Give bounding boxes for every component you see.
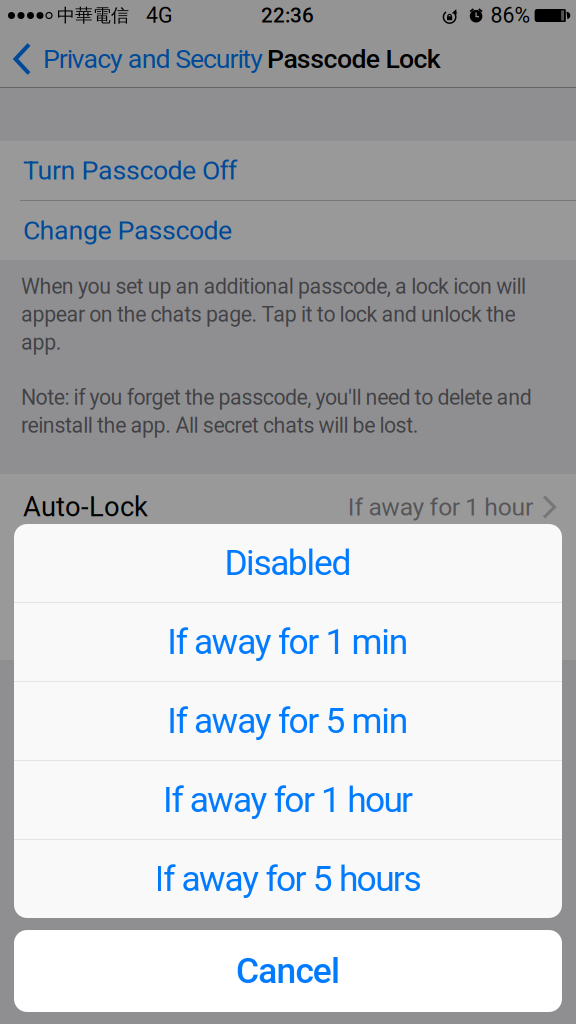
button[interactable]: Change Passcode — [0, 201, 576, 260]
staticText: Cancel — [236, 950, 340, 992]
button[interactable]: Cancel — [14, 930, 562, 1012]
button[interactable]: If away for 5 hours — [14, 840, 562, 918]
staticText: If away for 5 min — [167, 700, 409, 742]
button[interactable]: Turn Passcode Off — [0, 141, 576, 200]
button[interactable]: If away for 1 hour — [14, 761, 562, 839]
staticText: Auto-Lock — [23, 491, 148, 523]
staticText: Note: if you forget the passcode, you'll… — [21, 385, 532, 438]
staticText: 4G — [146, 3, 173, 28]
staticText: When you set up an additional passcode, … — [21, 274, 526, 355]
staticText: 22:36 — [261, 3, 314, 28]
staticText: 86% — [491, 3, 531, 28]
button[interactable]: Disabled — [14, 524, 562, 602]
button[interactable]: If away for 1 min — [14, 603, 562, 681]
staticText: If away for 5 hours — [155, 858, 421, 900]
button[interactable]: Auto-Lock — [0, 474, 576, 540]
button[interactable]: Back — [0, 42, 263, 75]
staticText: Privacy and Security — [43, 43, 263, 75]
staticText: Disabled — [224, 542, 352, 584]
staticText: Change Passcode — [23, 215, 232, 246]
staticText: If away for 1 hour — [163, 779, 413, 821]
button[interactable]: If away for 5 min — [14, 682, 562, 760]
staticText: If away for 1 hour — [348, 492, 533, 521]
staticText: 中華電信 — [57, 4, 129, 27]
staticText: Passcode Lock — [267, 43, 441, 75]
staticText: Turn Passcode Off — [23, 155, 237, 186]
staticText: If away for 1 min — [167, 621, 409, 663]
